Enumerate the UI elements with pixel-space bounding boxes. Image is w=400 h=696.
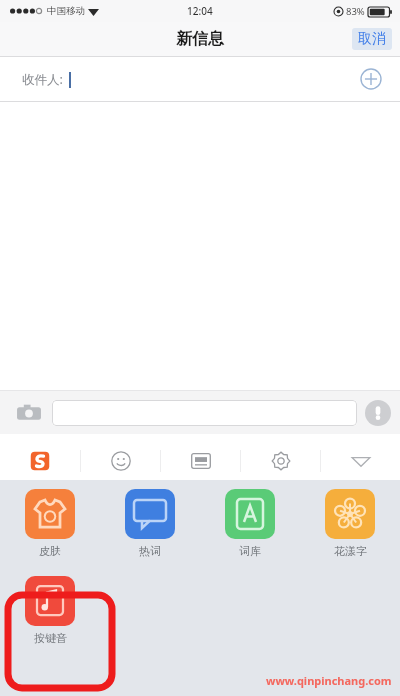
staticText: www.qinpinchang.com — [266, 673, 392, 688]
button[interactable]: Add recipient — [360, 68, 382, 90]
button[interactable]: 词库 — [200, 489, 300, 558]
staticText: 取消 — [358, 30, 386, 48]
button[interactable]: Voice — [365, 400, 391, 426]
staticText: 词库 — [239, 544, 261, 558]
button[interactable]: Emoji — [81, 442, 160, 480]
staticText: 收件人: — [22, 71, 63, 88]
button[interactable]: Keyboard — [161, 442, 240, 480]
button[interactable]: Camera — [16, 400, 42, 426]
button[interactable]: 皮肤 — [0, 489, 100, 558]
button[interactable]: 按键音 — [0, 576, 100, 645]
button[interactable]: Hide keyboard — [321, 442, 400, 480]
staticText: 热词 — [139, 544, 161, 558]
staticText: 新信息 — [176, 29, 224, 49]
button[interactable]: Sogou — [0, 442, 80, 480]
staticText: 皮肤 — [39, 544, 61, 558]
button[interactable]: 取消 — [352, 28, 392, 50]
staticText: 中国移动 — [47, 5, 85, 17]
button[interactable] — [52, 400, 357, 426]
staticText: 83% — [346, 5, 365, 18]
staticText: 花漾字 — [334, 544, 367, 558]
button[interactable]: 热词 — [100, 489, 200, 558]
staticText: 12:04 — [187, 4, 213, 18]
staticText: 按键音 — [34, 631, 67, 645]
button[interactable]: 花漾字 — [300, 489, 400, 558]
button[interactable]: 收件人: — [0, 57, 400, 101]
button[interactable]: Settings — [241, 442, 320, 480]
